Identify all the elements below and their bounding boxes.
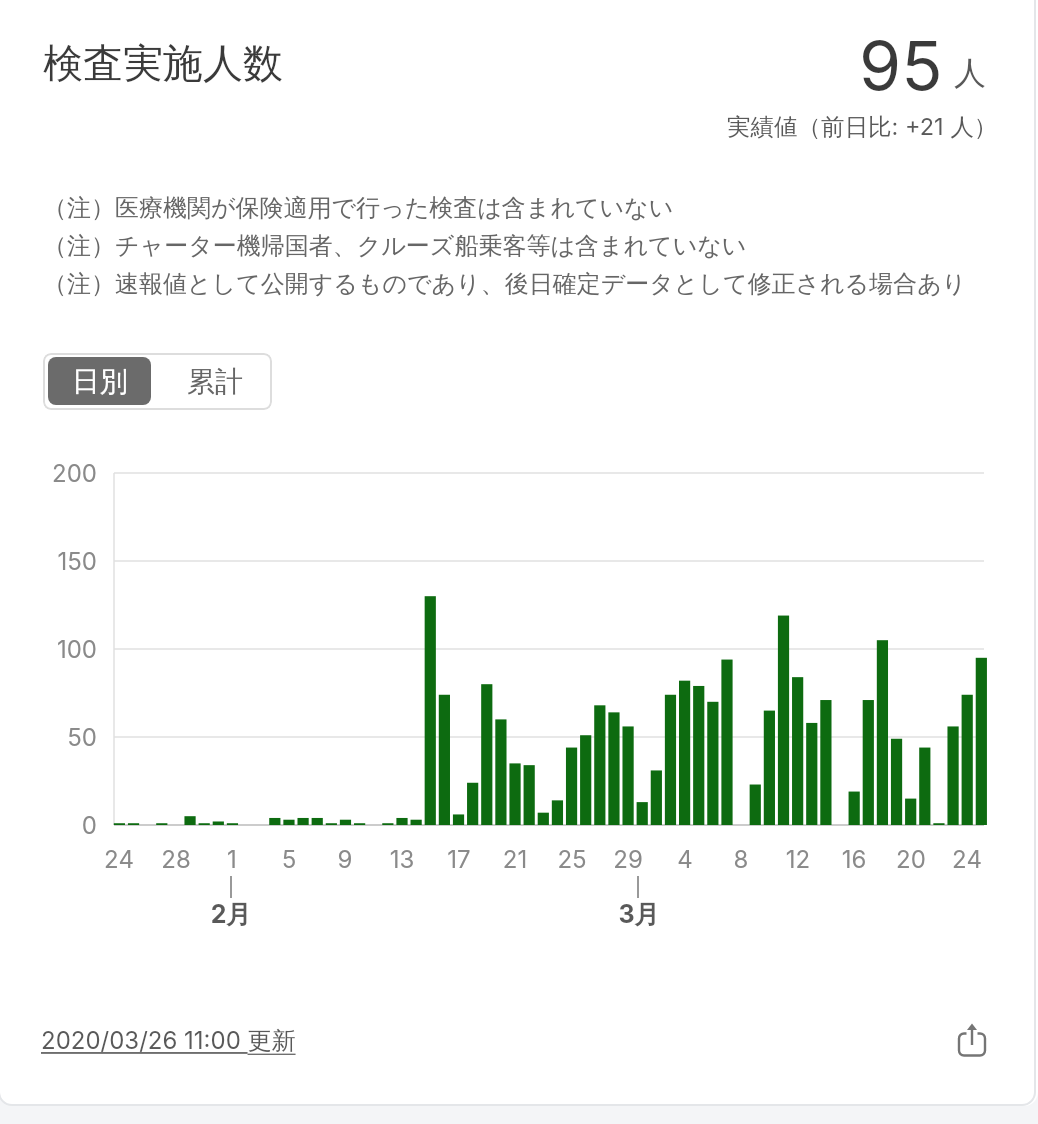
button[interactable]: 日別 [48, 357, 151, 405]
staticText: 検査実施人数 [43, 38, 283, 88]
staticText: 100 [24, 635, 97, 664]
staticText: 3月 [609, 899, 669, 931]
staticText: 16 [824, 845, 884, 874]
staticText: 人 [954, 53, 986, 93]
staticText: 0 [24, 811, 97, 840]
staticText: 29 [598, 845, 658, 874]
staticText: 24 [89, 845, 149, 874]
staticText: 日別 [72, 364, 128, 399]
staticText: 9 [315, 845, 375, 874]
staticText: 25 [542, 845, 602, 874]
staticText: 20 [881, 845, 941, 874]
staticText: 95 [859, 24, 943, 106]
staticText: 150 [24, 547, 97, 576]
staticText: 4 [655, 845, 715, 874]
staticText: （注）チャーター機帰国者、クルーズ船乗客等は含まれていない [43, 231, 747, 261]
staticText: 実績値（前日比: +21 人） [727, 112, 998, 142]
button[interactable]: 2020/03/26 11:00 更新 [41, 1026, 296, 1056]
staticText: 17 [429, 845, 489, 874]
staticText: （注）医療機関が保険適用で行った検査は含まれていない [43, 193, 674, 223]
staticText: 21 [485, 845, 545, 874]
staticText: （注）速報値として公開するものであり、後日確定データとして修正される場合あり [43, 269, 967, 299]
staticText: 2020/03/26 11:00 更新 [41, 1026, 296, 1056]
staticText: 13 [372, 845, 432, 874]
staticText: 1 [202, 845, 262, 874]
staticText: 12 [768, 845, 828, 874]
staticText: 5 [259, 845, 319, 874]
staticText: 24 [937, 845, 997, 874]
button[interactable]: 累計 [162, 357, 267, 405]
staticText: 2月 [201, 899, 261, 931]
staticText: 累計 [187, 364, 243, 399]
staticText: 200 [24, 459, 97, 488]
button[interactable] [950, 1016, 994, 1064]
staticText: 50 [24, 723, 97, 752]
staticText: 28 [146, 845, 206, 874]
staticText: 8 [711, 845, 771, 874]
